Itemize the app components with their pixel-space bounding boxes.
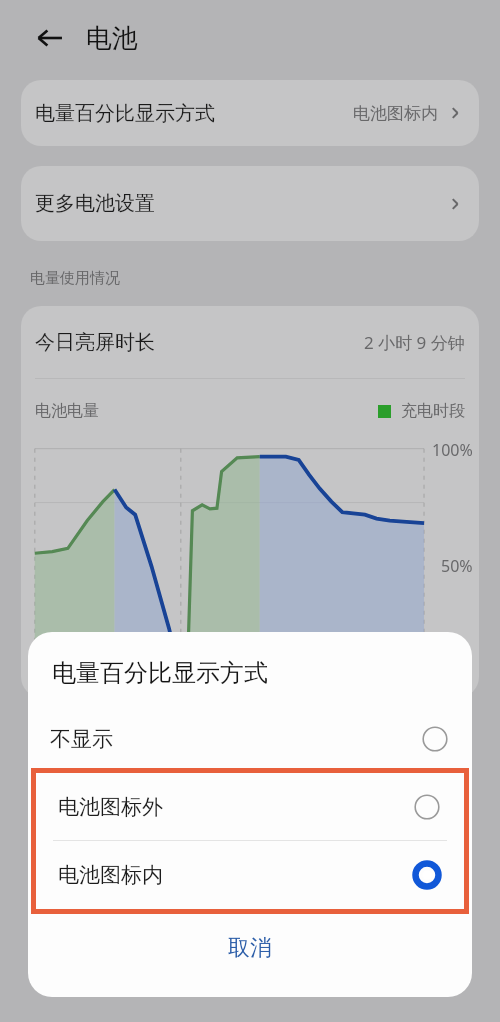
- staticText: 50%: [441, 555, 473, 577]
- staticText: 电量百分比显示方式: [52, 658, 268, 688]
- button[interactable]: 更多电池设置: [21, 166, 479, 241]
- staticText: 电池图标内: [353, 103, 438, 124]
- button[interactable]: 电池图标内: [36, 841, 464, 908]
- staticText: 取消: [228, 934, 272, 962]
- button[interactable]: 今日亮屏时长: [21, 306, 479, 378]
- staticText: 电量使用情况: [30, 269, 120, 288]
- staticText: 电池图标内: [58, 862, 163, 888]
- staticText: 电量百分比显示方式: [35, 101, 215, 126]
- button[interactable]: 取消: [28, 914, 472, 982]
- staticText: 100%: [432, 439, 473, 461]
- staticText: 电池电量: [35, 401, 99, 421]
- staticText: 2 小时 9 分钟: [364, 331, 465, 354]
- staticText: 充电时段: [401, 401, 465, 421]
- button[interactable]: 不显示: [28, 710, 472, 768]
- staticText: 今日亮屏时长: [35, 330, 155, 355]
- staticText: 不显示: [50, 726, 113, 752]
- staticText: 更多电池设置: [35, 191, 155, 216]
- button[interactable]: 电池图标外: [36, 773, 464, 840]
- staticText: 电池: [86, 22, 138, 55]
- button[interactable]: Back: [28, 16, 72, 60]
- button[interactable]: 电量百分比显示方式: [21, 80, 479, 146]
- staticText: 电池图标外: [58, 794, 163, 820]
